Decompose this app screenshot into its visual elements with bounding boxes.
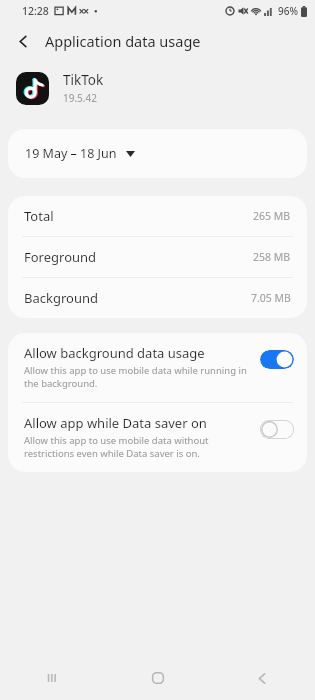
button[interactable]: Home [105, 656, 210, 700]
button[interactable]: Back [10, 28, 36, 54]
button[interactable]: Off [260, 420, 294, 439]
button[interactable]: On [260, 350, 294, 369]
staticText: 265 MB [253, 209, 291, 223]
button[interactable]: 19 May – 18 Jun [8, 129, 307, 178]
staticText: 7.05 MB [251, 291, 291, 305]
staticText: Application data usage [45, 31, 201, 51]
staticText: 19 May – 18 Jun [25, 145, 117, 162]
staticText: 258 MB [253, 250, 291, 264]
staticText: Allow this app to use mobile data while … [24, 364, 252, 390]
button[interactable]: Allow app while Data saver on [8, 403, 307, 472]
staticText: Total [24, 207, 54, 225]
staticText: Background [24, 289, 98, 307]
button[interactable]: Background [8, 278, 307, 318]
staticText: 12:28 [22, 4, 49, 18]
staticText: Allow background data usage [24, 344, 205, 362]
button[interactable]: Allow background data usage [8, 333, 307, 402]
staticText: 19.5.42 [63, 91, 97, 105]
staticText: Foreground [24, 248, 97, 266]
button[interactable]: Back [210, 656, 315, 700]
button[interactable]: Total [8, 196, 307, 236]
staticText: TikTok [63, 71, 104, 89]
staticText: Allow app while Data saver on [24, 414, 207, 432]
button[interactable]: Recents [0, 656, 105, 700]
staticText: 96% [278, 4, 298, 18]
button[interactable]: Foreground [8, 237, 307, 277]
staticText: Allow this app to use mobile data withou… [24, 434, 252, 460]
